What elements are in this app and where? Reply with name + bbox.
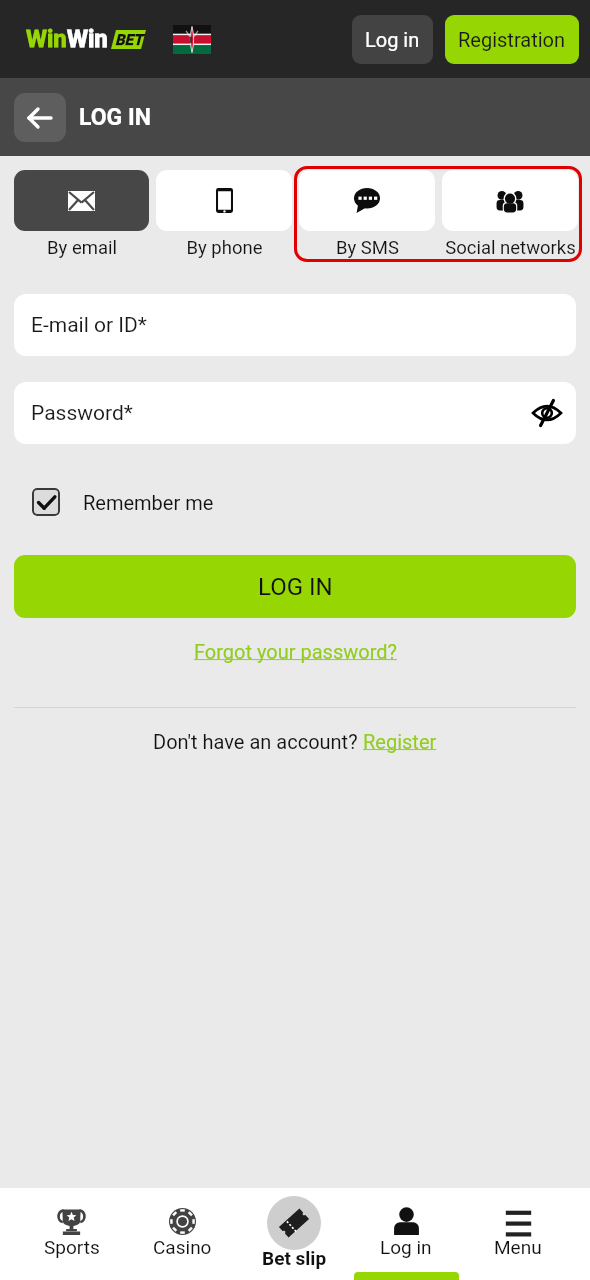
staticText: Menu [494, 1236, 542, 1258]
button[interactable]: E-mail or ID* [14, 294, 576, 356]
staticText: Password* [31, 401, 133, 426]
button[interactable]: Bet slip [238, 1188, 350, 1280]
button[interactable]: LOG IN [14, 555, 576, 618]
staticText: Social networks [445, 237, 576, 259]
staticText: E-mail or ID* [31, 313, 147, 338]
staticText: Win [67, 25, 108, 53]
staticText: BET [115, 31, 143, 49]
staticText: Register [363, 730, 437, 753]
button[interactable]: Sports [16, 1188, 127, 1280]
button[interactable]: Menu [462, 1188, 574, 1280]
staticText: Log in [380, 1236, 432, 1258]
button[interactable]: Social networks [442, 170, 578, 259]
button[interactable]: Log in [352, 15, 433, 64]
staticText: Log in [365, 28, 420, 51]
button[interactable]: Log in [350, 1188, 462, 1280]
staticText: Remember me [83, 491, 214, 514]
staticText: By phone [186, 237, 263, 259]
button[interactable]: By email [14, 170, 149, 259]
staticText: Registration [458, 28, 566, 51]
staticText: By SMS [336, 237, 399, 259]
staticText: Don't have an account? [153, 730, 363, 753]
button[interactable]: Remember me [32, 488, 590, 516]
staticText: Bet slip [262, 1247, 327, 1269]
button[interactable]: Registration [445, 15, 579, 64]
button[interactable]: By SMS [299, 170, 435, 259]
button[interactable]: Password* [14, 382, 576, 444]
button[interactable]: Register [363, 730, 437, 753]
staticText: Win [26, 25, 67, 53]
button[interactable]: By phone [156, 170, 292, 259]
button[interactable]: Casino [127, 1188, 238, 1280]
staticText: Forgot your password? [194, 640, 397, 663]
staticText: LOG IN [258, 573, 333, 601]
staticText: Sports [44, 1236, 100, 1258]
button[interactable]: Back [14, 93, 66, 142]
staticText: LOG IN [79, 104, 151, 131]
staticText: Casino [153, 1236, 212, 1258]
button[interactable]: Forgot your password? [194, 640, 397, 663]
staticText: By email [47, 237, 117, 259]
